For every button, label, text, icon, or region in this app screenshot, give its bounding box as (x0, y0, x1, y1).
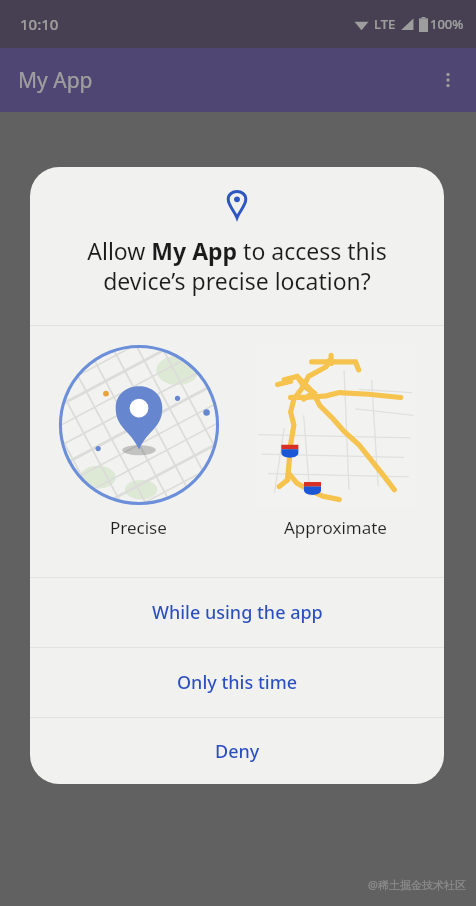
button[interactable]: Precise (51, 326, 226, 539)
staticText: @稀土掘金技术社区 (368, 877, 466, 892)
button[interactable]: More options (426, 58, 470, 102)
button[interactable]: Approximate (248, 326, 423, 539)
button[interactable]: Deny (30, 718, 444, 784)
staticText: Precise (110, 516, 167, 539)
staticText: Deny (215, 739, 260, 764)
staticText: Only this time (177, 670, 298, 695)
staticText: 10:10 (20, 14, 59, 34)
staticText: LTE (374, 15, 396, 33)
button[interactable]: While using the app (30, 578, 444, 647)
staticText: Allow My App to access this device’s pre… (54, 235, 420, 297)
button[interactable]: Only this time (30, 648, 444, 717)
staticText: While using the app (152, 600, 323, 625)
staticText: 100% (430, 15, 464, 33)
staticText: Approximate (284, 516, 387, 539)
staticText: My App (18, 66, 93, 95)
